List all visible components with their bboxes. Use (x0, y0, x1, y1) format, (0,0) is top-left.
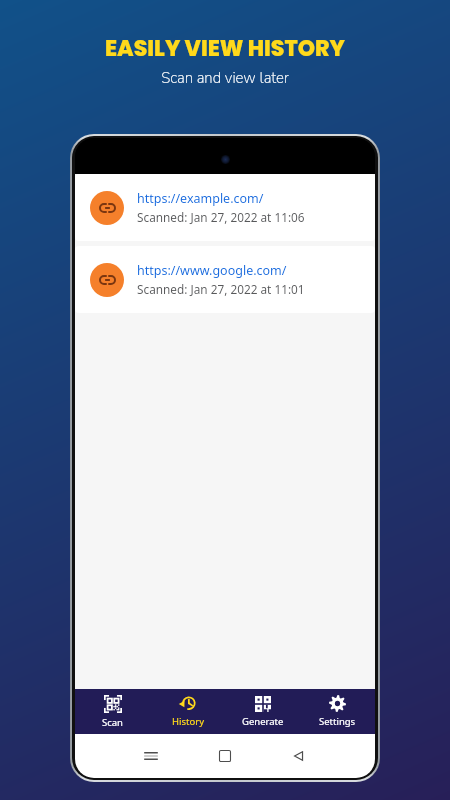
staticText: https://www.google.com/ (137, 262, 287, 279)
button[interactable]: https://www.google.com/ (75, 246, 375, 313)
button[interactable]: History (150, 689, 225, 734)
button[interactable]: Back (288, 745, 310, 767)
button[interactable]: Recents (140, 745, 162, 767)
staticText: History (172, 715, 204, 728)
button[interactable]: Scan (75, 689, 150, 734)
button[interactable]: Generate (225, 689, 300, 734)
staticText: Scanned: Jan 27, 2022 at 11:01 (137, 281, 305, 297)
staticText: https://example.com/ (137, 190, 264, 207)
button[interactable]: https://example.com/ (75, 174, 375, 241)
staticText: Settings (319, 715, 356, 728)
button[interactable]: Settings (300, 689, 375, 734)
staticText: Scan (102, 716, 123, 729)
staticText: EASILY VIEW HISTORY (105, 33, 345, 64)
button[interactable]: Home (214, 745, 236, 767)
staticText: Generate (242, 715, 284, 728)
staticText: Scanned: Jan 27, 2022 at 11:06 (137, 209, 305, 225)
staticText: Scan and view later (161, 68, 289, 88)
